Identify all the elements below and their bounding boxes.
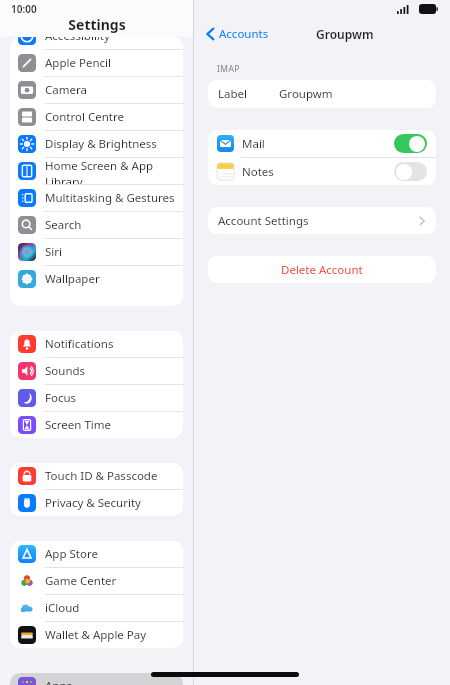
staticText: Privacy & Security xyxy=(45,495,141,511)
button[interactable]: Siri xyxy=(10,239,183,265)
button[interactable]: Label xyxy=(208,80,436,108)
staticText: Siri xyxy=(45,244,62,260)
staticText: 10:00 xyxy=(11,2,37,16)
staticText: Touch ID & Passcode xyxy=(45,468,158,484)
button[interactable]: Mail xyxy=(208,130,436,157)
staticText: Home Screen & App Library xyxy=(45,158,183,184)
button[interactable]: Apps xyxy=(10,673,183,685)
staticText: Apple Pencil xyxy=(45,55,111,71)
other: Open xyxy=(419,216,425,226)
button[interactable]: Off xyxy=(394,162,427,181)
staticText: Notes xyxy=(242,164,274,180)
button[interactable]: Screen Time xyxy=(10,412,183,438)
staticText: Display & Brightness xyxy=(45,136,157,152)
button[interactable]: Delete Account xyxy=(208,256,436,283)
button[interactable]: Wallet & Apple Pay xyxy=(10,622,183,648)
button[interactable]: App Store xyxy=(10,541,183,567)
staticText: Game Center xyxy=(45,573,117,589)
button[interactable]: Game Center xyxy=(10,568,183,594)
button[interactable]: Control Centre xyxy=(10,104,183,130)
staticText: Delete Account xyxy=(281,262,363,278)
staticText: App Store xyxy=(45,546,98,562)
staticText: IMAP xyxy=(217,63,240,75)
button[interactable]: Sounds xyxy=(10,358,183,384)
button[interactable]: iCloud xyxy=(10,595,183,621)
staticText: iCloud xyxy=(45,600,80,616)
button[interactable]: Accounts xyxy=(202,23,273,45)
button[interactable]: Search xyxy=(10,212,183,238)
button[interactable]: Notes xyxy=(208,158,436,185)
staticText: Notifications xyxy=(45,336,114,352)
staticText: Wallet & Apple Pay xyxy=(45,627,147,643)
staticText: Control Centre xyxy=(45,109,124,125)
button[interactable]: Account Settings xyxy=(208,207,436,234)
staticText: Account Settings xyxy=(218,213,309,229)
staticText: Focus xyxy=(45,390,77,406)
button[interactable]: Apple Pencil xyxy=(10,50,183,76)
staticText: Apps xyxy=(45,678,73,685)
button[interactable]: Camera xyxy=(10,77,183,103)
staticText: Wallpaper xyxy=(45,271,100,287)
staticText: Sounds xyxy=(45,363,86,379)
staticText: Settings xyxy=(68,15,126,34)
staticText: Accounts xyxy=(219,26,269,42)
button[interactable]: Notifications xyxy=(10,331,183,357)
button[interactable]: Privacy & Security xyxy=(10,490,183,516)
staticText: Camera xyxy=(45,82,87,98)
button[interactable]: On xyxy=(394,134,427,153)
staticText: Groupwm xyxy=(316,26,374,42)
button[interactable]: Home Screen & App Library xyxy=(10,158,183,184)
button[interactable]: Accessibility xyxy=(10,37,183,49)
staticText: Screen Time xyxy=(45,417,112,433)
staticText: Mail xyxy=(242,136,265,152)
button[interactable]: Wallpaper xyxy=(10,266,183,292)
button[interactable]: Touch ID & Passcode xyxy=(10,463,183,489)
staticText: Multitasking & Gestures xyxy=(45,190,175,206)
staticText: Accessibility xyxy=(45,37,110,44)
staticText: Groupwm xyxy=(279,86,333,102)
button[interactable]: Display & Brightness xyxy=(10,131,183,157)
button[interactable]: Multitasking & Gestures xyxy=(10,185,183,211)
staticText: Search xyxy=(45,217,82,233)
staticText: Label xyxy=(218,86,248,102)
button[interactable]: Focus xyxy=(10,385,183,411)
